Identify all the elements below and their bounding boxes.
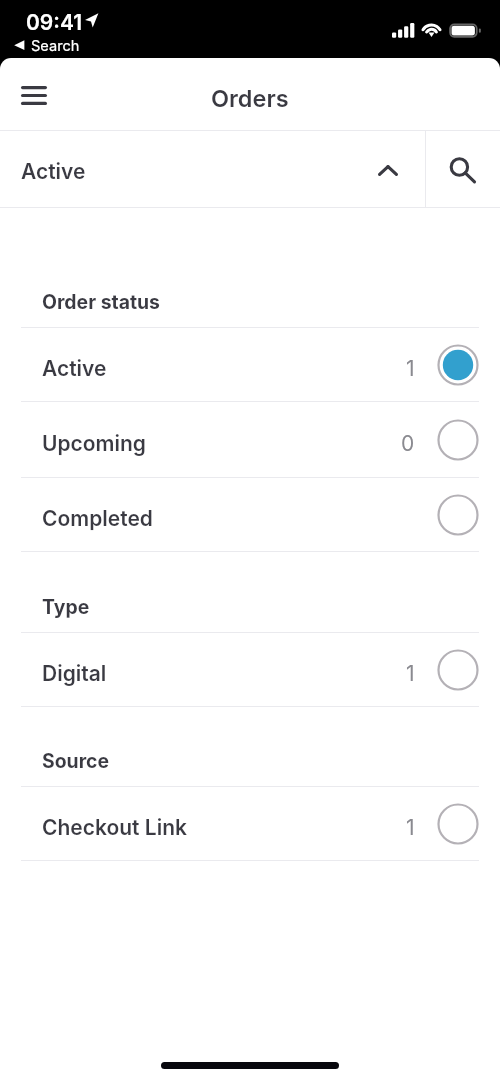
staticText: Source	[42, 749, 110, 772]
staticText: Checkout Link	[42, 815, 187, 840]
button[interactable]: Upcoming	[0, 402, 500, 478]
staticText: 1	[406, 356, 415, 381]
staticText: 0	[401, 431, 415, 456]
button[interactable]: Checkout Link	[0, 787, 500, 861]
staticText: Upcoming	[42, 431, 146, 456]
staticText: Completed	[42, 506, 153, 531]
staticText: Active	[21, 159, 86, 184]
button[interactable]: Search	[426, 131, 500, 208]
staticText: Orders	[211, 84, 289, 112]
button[interactable]: Menu	[8, 69, 60, 121]
staticText: Search	[31, 37, 80, 55]
staticText: 09:41	[26, 10, 83, 35]
staticText: Active	[42, 356, 107, 381]
staticText: Type	[42, 595, 90, 618]
staticText: 1	[406, 815, 415, 840]
button[interactable]: Completed	[0, 478, 500, 552]
button[interactable]: Active	[0, 131, 425, 208]
staticText: Digital	[42, 661, 107, 686]
button[interactable]: Digital	[0, 633, 500, 707]
staticText: 1	[406, 661, 415, 686]
button[interactable]: Active	[0, 328, 500, 402]
staticText: Order status	[42, 290, 160, 313]
